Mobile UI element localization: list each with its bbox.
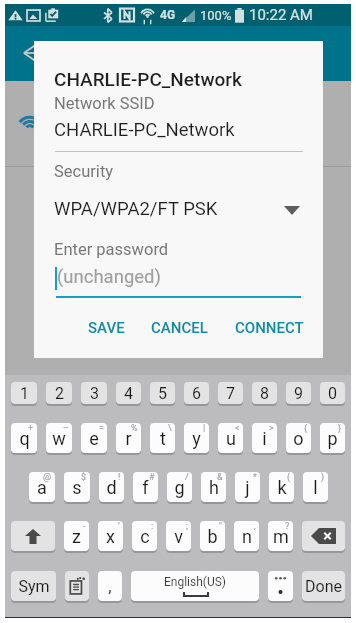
button[interactable]: SAVE [84,311,129,345]
button[interactable]: w [46,423,72,453]
button[interactable]: 5 [150,382,175,404]
button[interactable]: Period [268,571,293,601]
staticText: : [151,521,154,532]
staticText: m [273,526,289,547]
staticText: y [192,428,201,449]
staticText: 2 [55,384,64,403]
staticText: ( [287,472,291,483]
staticText: 4G [160,8,176,22]
staticText: % [131,423,138,434]
staticText: r [125,428,132,449]
staticText: + [28,423,34,434]
staticText: 6 [192,384,201,403]
staticText: , [254,521,256,532]
button[interactable]: b [200,521,225,551]
button[interactable]: e [81,423,107,453]
staticText: Done [305,577,342,596]
staticText: ! [118,472,121,483]
staticText: w [52,428,66,449]
button[interactable]: 4 [116,382,141,404]
button[interactable]: Input method options [65,571,89,601]
button[interactable]: 2 [46,382,72,404]
button[interactable]: Done [302,571,345,601]
button[interactable]: f [133,472,158,502]
staticText: g [174,477,185,498]
staticText: ? [285,521,290,532]
staticText: x [106,526,115,547]
staticText: k [277,477,287,498]
staticText: (unchanged) [57,266,161,288]
button[interactable]: g [167,472,192,502]
staticText: , [108,576,112,596]
staticText: | [203,423,206,434]
button[interactable]: CONNECT [231,311,308,345]
button[interactable]: c [132,521,157,551]
button[interactable]: Backspace [302,521,345,551]
staticText: 3 [90,384,99,403]
button[interactable]: d [99,472,124,502]
button[interactable]: y [184,423,209,453]
button[interactable]: Navigate back [23,42,45,64]
button[interactable]: l [303,472,328,502]
button[interactable]: 6 [184,382,209,404]
staticText: l [313,477,318,498]
staticText: 4 [124,384,133,403]
button[interactable]: Sym [11,571,56,601]
staticText: s [72,477,82,498]
button[interactable]: 8 [252,382,277,404]
button[interactable]: 9 [286,382,311,404]
staticText: # [149,472,155,483]
button[interactable]: Shift [11,521,55,551]
staticText: h [209,477,219,498]
button[interactable]: t [150,423,175,453]
button[interactable]: Space [131,571,259,601]
staticText: – [63,423,69,434]
staticText: c [140,526,150,547]
staticText: Security [54,162,114,181]
staticText: ) [321,472,325,483]
staticText: v [174,526,183,547]
button[interactable]: CANCEL [147,311,212,345]
staticText: 100% [200,8,232,23]
staticText: \ [168,423,172,434]
button[interactable]: z [64,521,89,551]
staticText: WPA/WPA2/FT PSK [54,198,218,220]
button[interactable]: u [218,423,243,453]
button[interactable]: p [320,423,345,453]
button[interactable]: s [64,472,90,502]
staticText: e [89,428,99,449]
staticText: 9 [294,384,303,403]
button[interactable]: m [268,521,293,551]
staticText: p [327,428,338,449]
staticText: n [242,526,252,547]
staticText: } [338,423,342,434]
button[interactable]: Security type [53,196,305,224]
button[interactable]: , [98,571,122,601]
button[interactable]: v [166,521,191,551]
staticText: 10:22 AM [249,6,313,24]
staticText: < [235,423,240,434]
button[interactable]: k [269,472,294,502]
button[interactable]: 1 [11,382,37,404]
staticText: SAVE [88,319,125,337]
button[interactable]: r [116,423,141,453]
button[interactable]: h [201,472,226,502]
button[interactable]: 7 [218,382,243,404]
button[interactable]: x [98,521,123,551]
staticText: u [226,428,236,449]
button[interactable]: q [11,423,37,453]
button[interactable]: i [252,423,277,453]
staticText: Enter password [54,240,169,259]
staticText: CHARLIE-PC_Network [54,68,242,90]
staticText: * [253,472,257,483]
staticText: a [37,477,47,498]
staticText: b [207,526,218,547]
staticText: 0 [328,384,337,403]
button[interactable]: 3 [81,382,107,404]
button[interactable]: n [234,521,259,551]
button[interactable]: j [235,472,260,502]
button[interactable]: 0 [320,382,345,404]
button[interactable]: a [29,472,55,502]
staticText: 8 [260,384,269,403]
button[interactable]: o [286,423,311,453]
